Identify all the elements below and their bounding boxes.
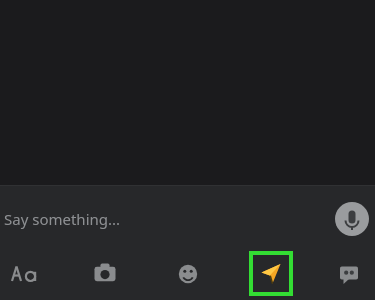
button[interactable]: Stickers and emoji xyxy=(167,253,209,295)
button[interactable]: Camera xyxy=(84,253,126,295)
button[interactable]: Send location xyxy=(249,251,293,296)
button[interactable]: Sticker xyxy=(328,253,370,295)
button[interactable]: Voice message xyxy=(335,202,369,236)
button[interactable]: Text formatting xyxy=(4,253,46,295)
button[interactable]: Say something... xyxy=(4,209,121,229)
